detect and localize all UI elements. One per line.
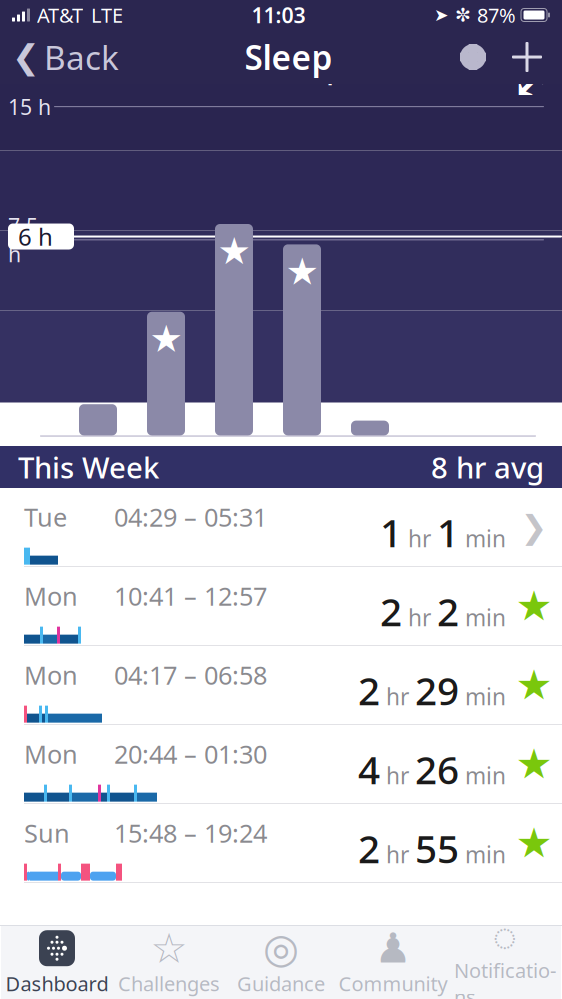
staticText: ★ xyxy=(217,230,250,272)
staticText: min xyxy=(459,760,506,791)
staticText: min xyxy=(459,839,506,870)
staticText: 04:17 – 06:58 xyxy=(114,658,267,692)
staticText: Challenges xyxy=(118,970,220,997)
staticText: ★ xyxy=(515,819,552,866)
staticText: ♟ xyxy=(374,925,411,972)
button[interactable]: ◌ xyxy=(449,927,561,997)
button[interactable]: ♟ xyxy=(337,927,449,997)
staticText: 11:03 xyxy=(251,1,305,29)
staticText: 26 xyxy=(415,744,459,795)
button[interactable]: ☆ xyxy=(113,927,225,997)
staticText: hr xyxy=(402,523,437,554)
button[interactable]: Mon xyxy=(0,725,562,804)
staticText: Tue xyxy=(24,500,67,534)
staticText: ▲ xyxy=(499,435,512,454)
staticText: AT&T xyxy=(37,2,83,28)
staticText: ★ xyxy=(285,250,318,293)
staticText: W xyxy=(425,441,450,476)
staticText: ★ xyxy=(515,740,552,787)
staticText: LTE xyxy=(91,2,123,28)
staticText: 2 xyxy=(358,823,380,874)
staticText: Community xyxy=(338,970,447,997)
staticText: 1 xyxy=(380,507,402,558)
staticText: 7.5 h xyxy=(8,211,38,268)
staticText: min xyxy=(459,602,506,633)
staticText: Mon xyxy=(24,658,78,692)
staticText: ◎ xyxy=(263,925,299,972)
staticText: hr xyxy=(380,760,415,791)
staticText: ☆ xyxy=(150,925,187,972)
button[interactable] xyxy=(500,30,554,84)
staticText: 1 xyxy=(437,507,459,558)
staticText: ➤ xyxy=(434,5,449,25)
button[interactable]: Sun xyxy=(0,804,562,883)
staticText: Mon xyxy=(24,579,78,613)
staticText: ✼ xyxy=(455,4,471,26)
button[interactable]: ❮ xyxy=(0,30,131,84)
staticText: 2 xyxy=(437,586,459,637)
staticText: Mon xyxy=(24,737,78,771)
staticText: 2 xyxy=(358,665,380,716)
staticText: S xyxy=(226,441,241,476)
staticText: Back xyxy=(44,35,119,79)
button[interactable]: Mon xyxy=(0,646,562,725)
staticText: Notifications xyxy=(454,957,556,999)
staticText: ❯ xyxy=(520,509,547,545)
staticText: S xyxy=(158,441,173,476)
staticText: 4 xyxy=(358,744,380,795)
staticText: 04:29 – 05:31 xyxy=(114,500,267,534)
staticText: Dashboard xyxy=(5,970,108,997)
staticText: hr xyxy=(380,839,415,870)
staticText: ★ xyxy=(149,318,182,360)
staticText: M xyxy=(289,441,314,476)
staticText: T xyxy=(362,441,377,476)
staticText: ★ xyxy=(515,661,552,708)
staticText: hr xyxy=(380,681,415,712)
staticText: This Week xyxy=(18,447,159,486)
staticText: T xyxy=(499,448,513,482)
staticText: 87% xyxy=(477,2,516,28)
staticText: ★ xyxy=(515,582,552,629)
staticText: 15:48 – 19:24 xyxy=(114,816,267,850)
button[interactable]: ⤢ xyxy=(508,58,554,104)
staticText: min xyxy=(459,681,506,712)
staticText: ❮ xyxy=(12,38,40,76)
staticText: 2 xyxy=(380,586,402,637)
staticText: Guidance xyxy=(237,970,325,997)
staticText: Sleep xyxy=(244,35,332,79)
staticText: 8 hr avg xyxy=(431,447,544,486)
staticText: 6 h xyxy=(18,221,53,252)
staticText: 55 xyxy=(415,823,459,874)
staticText: F xyxy=(91,441,105,476)
button[interactable]: Mon xyxy=(0,567,562,646)
staticText: Sun xyxy=(24,816,70,850)
staticText: Hours Slept xyxy=(209,52,352,86)
staticText: 20:44 – 01:30 xyxy=(114,737,267,771)
button[interactable]: Tue xyxy=(0,488,562,567)
staticText: 29 xyxy=(415,665,459,716)
button[interactable]: ◎ xyxy=(225,927,337,997)
staticText: 15 h xyxy=(8,92,51,121)
button[interactable] xyxy=(446,30,500,84)
staticText: hr xyxy=(402,602,437,633)
button[interactable]: Dashboard xyxy=(1,927,113,997)
staticText: min xyxy=(459,523,506,554)
staticText: 10:41 – 12:57 xyxy=(114,579,267,613)
staticText: ◌ xyxy=(492,907,517,962)
staticText: ⤢ xyxy=(512,55,550,107)
